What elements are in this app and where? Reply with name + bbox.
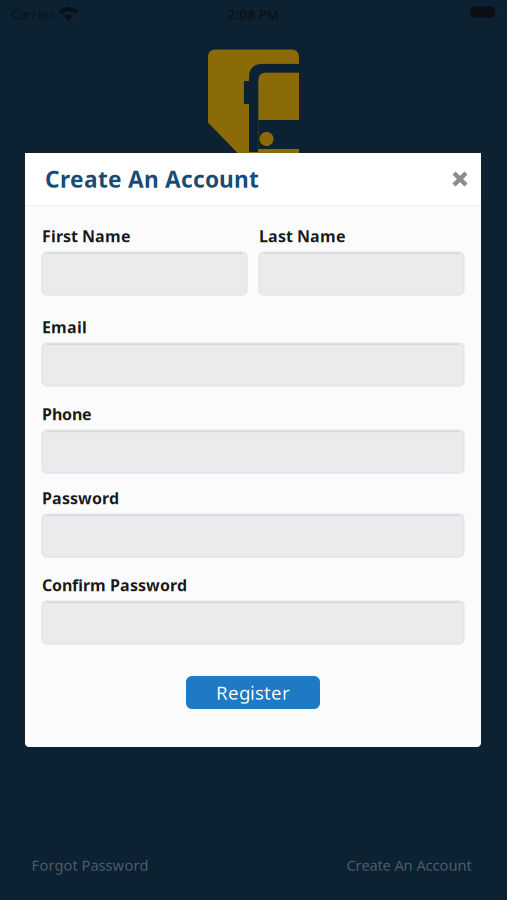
- staticText: Password: [42, 487, 119, 509]
- staticText: 2:08 PM: [227, 5, 278, 23]
- staticText: Last Name: [259, 225, 346, 247]
- button[interactable]: Create An Account: [346, 855, 471, 875]
- button[interactable]: Register: [186, 676, 320, 709]
- staticText: Email: [42, 316, 87, 338]
- button[interactable]: Forgot Password: [31, 855, 148, 875]
- staticText: Register: [216, 680, 290, 705]
- staticText: Phone: [42, 403, 92, 425]
- staticText: Confirm Password: [42, 574, 187, 596]
- staticText: First Name: [42, 225, 131, 247]
- button[interactable]: Close: [452, 171, 468, 187]
- staticText: Forgot Password: [31, 855, 148, 875]
- staticText: Create An Account: [45, 164, 259, 194]
- staticText: Carrier: [11, 5, 55, 23]
- staticText: Create An Account: [346, 855, 471, 875]
